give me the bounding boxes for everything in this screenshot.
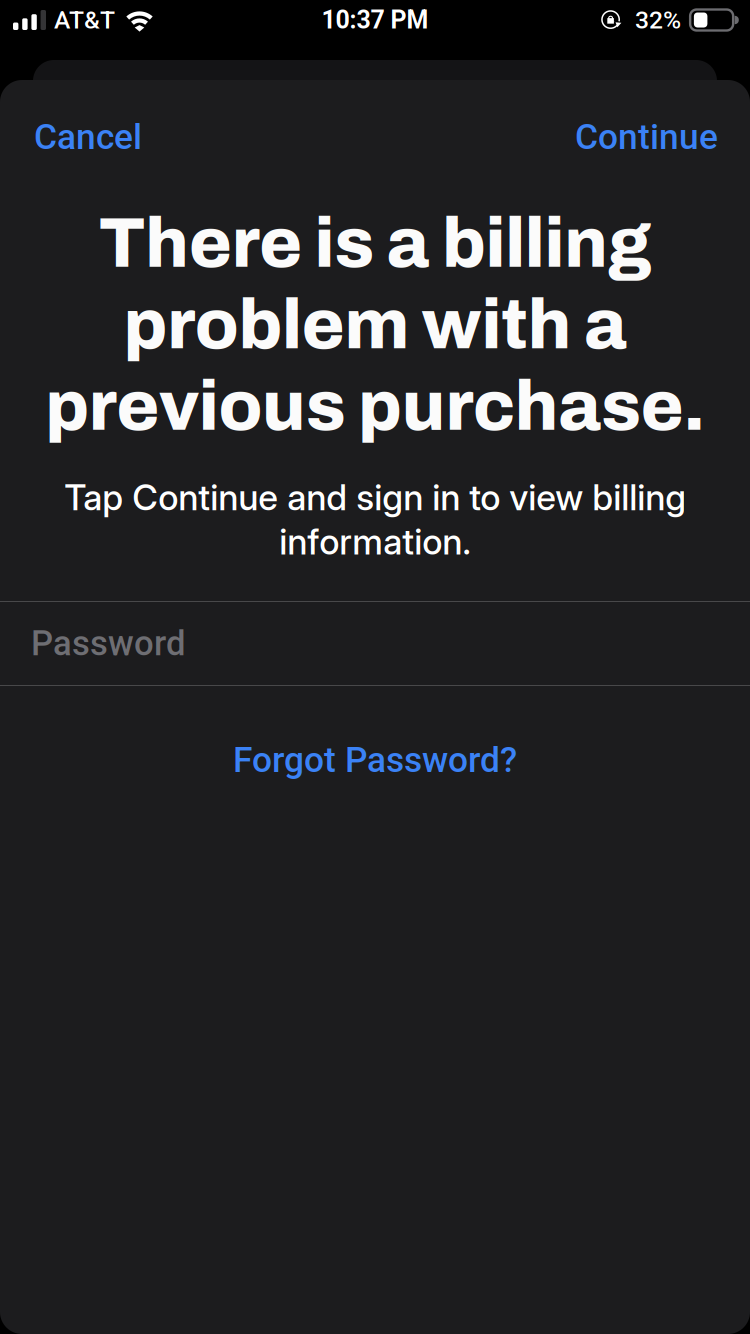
button[interactable]: Forgot Password? (165, 725, 585, 795)
staticText: 32% (635, 5, 681, 34)
staticText: Continue (575, 116, 718, 158)
staticText: Forgot Password? (233, 739, 517, 781)
staticText: AT&T (54, 5, 115, 34)
staticText: Tap Continue and sign in to view billing… (64, 476, 686, 563)
staticText: There is a billing problem with a previo… (45, 206, 705, 444)
staticText: Password (31, 623, 186, 664)
staticText: Cancel (34, 116, 142, 158)
staticText: 10:37 PM (321, 5, 428, 35)
button[interactable]: Continue (575, 115, 718, 159)
button[interactable]: Cancel (34, 115, 142, 159)
